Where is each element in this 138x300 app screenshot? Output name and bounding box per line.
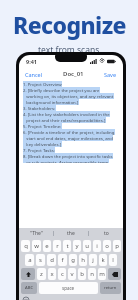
button[interactable]: c	[58, 268, 66, 280]
staticText: space	[62, 285, 75, 291]
button[interactable]: m	[98, 268, 106, 280]
staticText: the	[67, 230, 75, 237]
button[interactable]: l	[109, 254, 117, 266]
staticText: 8. [Break down the project into specific…	[23, 153, 113, 159]
staticText: working on, its objectives, and any rele…	[23, 93, 114, 99]
staticText: c	[61, 270, 64, 278]
staticText: b	[80, 270, 84, 278]
staticText: project and their roles/responsibilities…	[23, 117, 106, 123]
button[interactable]: b	[78, 268, 86, 280]
staticText: 4. [List the key stakeholders involved i…	[23, 111, 110, 117]
button[interactable]: Cancel	[24, 70, 44, 79]
button[interactable]: q	[21, 240, 30, 252]
staticText: 5. Project Timeline:	[23, 123, 62, 129]
button[interactable]: f	[58, 254, 67, 266]
staticText: g	[71, 256, 75, 264]
staticText: f	[61, 256, 64, 264]
button[interactable]: Save	[103, 70, 118, 79]
button[interactable]: Emoji	[22, 296, 29, 300]
button[interactable]: o	[103, 240, 111, 252]
button[interactable]: y	[73, 240, 81, 252]
staticText: o	[105, 242, 109, 250]
button[interactable]: the	[54, 228, 88, 239]
staticText: j	[92, 256, 94, 264]
button[interactable]: k	[99, 254, 107, 266]
staticText: q	[24, 242, 28, 250]
button[interactable]: space	[39, 282, 98, 294]
button[interactable]: to	[89, 228, 123, 239]
staticText: l	[112, 256, 114, 264]
button[interactable]: ABC	[21, 282, 37, 294]
staticText: Cancel	[25, 71, 43, 78]
staticText: text from scans	[38, 44, 100, 56]
staticText: 1. Project Overview	[23, 81, 62, 87]
staticText: x	[50, 270, 54, 278]
staticText: 3. Stakeholders:	[23, 105, 56, 111]
staticText: 7. Project Tasks:	[23, 147, 55, 153]
staticText: v	[70, 270, 74, 278]
button[interactable]: x	[48, 268, 56, 280]
staticText: start and end dates, major milestones, a…	[23, 135, 113, 141]
staticText: ABC	[25, 285, 34, 291]
staticText: w	[34, 242, 39, 250]
staticText: to	[104, 230, 109, 237]
staticText: or sub-projects. Assign responsible team	[23, 159, 109, 163]
staticText: a	[28, 256, 32, 264]
staticText: n	[90, 270, 94, 278]
button[interactable]: w	[32, 240, 41, 252]
button[interactable]: g	[69, 254, 77, 266]
button[interactable]: t	[63, 240, 71, 252]
staticText: Save	[104, 71, 117, 78]
button[interactable]: n	[88, 268, 96, 280]
staticText: 9:41	[26, 58, 37, 65]
button[interactable]: u	[83, 240, 91, 252]
staticText: h	[81, 256, 85, 264]
staticText: 6. [Provide a timeline of the project, i…	[23, 129, 115, 135]
button[interactable]: "The"	[19, 228, 53, 239]
button[interactable]: Shift	[21, 268, 35, 280]
button[interactable]: return	[100, 282, 121, 294]
staticText: t	[66, 242, 69, 250]
staticText: background information.]	[23, 99, 79, 105]
staticText: z	[40, 270, 43, 278]
staticText: 2. [Briefly describe the project you are	[23, 87, 100, 93]
button[interactable]: p	[113, 240, 121, 252]
staticText: p	[115, 242, 119, 250]
staticText: "The"	[30, 230, 43, 237]
button[interactable]: d	[47, 254, 56, 266]
staticText: e	[45, 242, 49, 250]
staticText: i	[96, 242, 98, 250]
button[interactable]: z	[37, 268, 46, 280]
staticText: m	[99, 270, 105, 278]
button[interactable]: s	[36, 254, 45, 266]
button[interactable]: j	[89, 254, 97, 266]
button[interactable]: Backspace	[108, 268, 121, 280]
staticText: r	[56, 242, 59, 250]
staticText: return	[104, 285, 117, 291]
staticText: key deliverables.]	[23, 141, 62, 147]
button[interactable]: i	[93, 240, 101, 252]
staticText: d	[50, 256, 54, 264]
staticText: Recognize	[13, 9, 126, 40]
button[interactable]: a	[25, 254, 34, 266]
button[interactable]: r	[53, 240, 61, 252]
staticText: Doc_01	[63, 70, 84, 78]
staticText: y	[75, 242, 79, 250]
button[interactable]: v	[68, 268, 76, 280]
button[interactable]: h	[79, 254, 87, 266]
staticText: u	[85, 242, 89, 250]
staticText: s	[39, 256, 42, 264]
staticText: k	[101, 256, 105, 264]
button[interactable]: e	[43, 240, 51, 252]
